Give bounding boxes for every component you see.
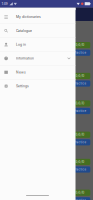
button[interactable]: My dictionaries — [0, 10, 75, 24]
staticText: News — [16, 70, 26, 74]
button[interactable]: Settings — [0, 79, 75, 93]
staticText: 0/0/10 — [75, 102, 84, 105]
staticText: Practice — [73, 51, 86, 54]
staticText: Practice — [73, 109, 86, 113]
staticText: Practice — [73, 168, 86, 171]
staticText: 0/0/10 — [75, 43, 84, 47]
staticText: Practice — [73, 141, 86, 144]
staticText: 0/0/10 — [75, 133, 84, 136]
button[interactable]: Log in — [0, 38, 75, 51]
staticText: Log in — [16, 42, 26, 46]
staticText: Settings — [16, 84, 29, 88]
button[interactable]: Catalogue — [0, 24, 75, 37]
staticText: Information — [16, 56, 34, 60]
staticText: 0/0/10 — [75, 191, 84, 194]
staticText: 0/0/10 — [75, 160, 84, 164]
staticText: 0/0/10 — [75, 74, 84, 78]
button[interactable]: Information — [0, 52, 75, 65]
staticText: My dictionaries — [16, 15, 41, 19]
staticText: Practice — [73, 199, 86, 200]
staticText: Catalogue — [16, 29, 32, 33]
staticText: 1:49 — [2, 2, 8, 6]
button[interactable]: News — [0, 65, 75, 79]
staticText: Practice — [73, 82, 86, 85]
